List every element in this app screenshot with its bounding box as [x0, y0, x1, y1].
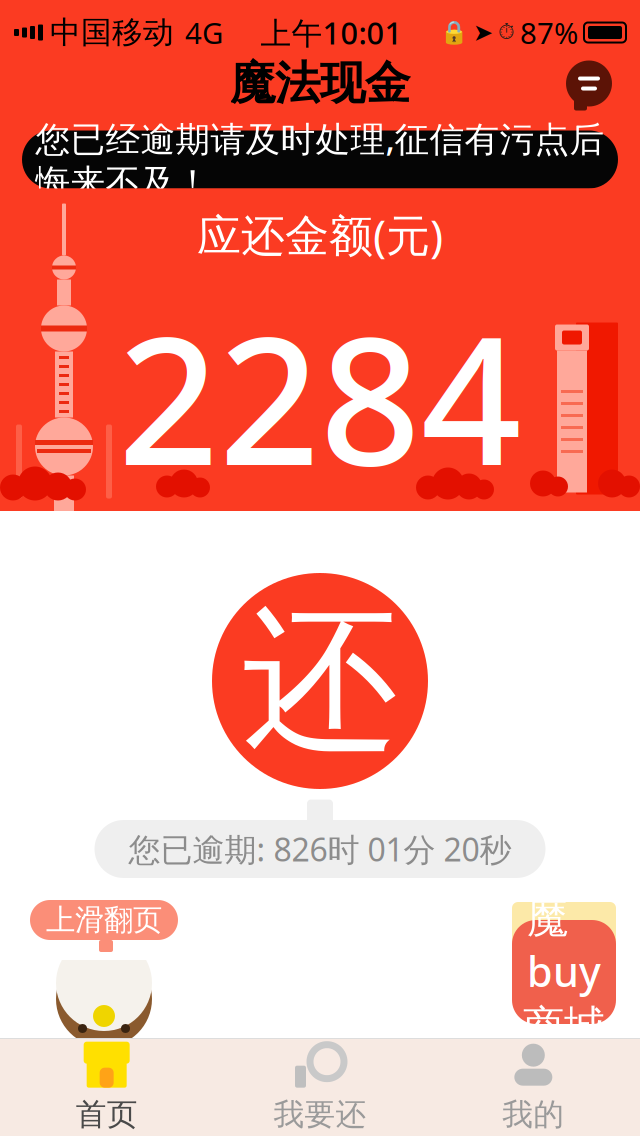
staticText: 上滑翻页	[46, 902, 162, 938]
button[interactable]: 我要还	[213, 1039, 427, 1135]
button[interactable]: 我的	[427, 1039, 640, 1135]
staticText: 首页	[76, 1096, 138, 1133]
staticText: 4G	[185, 13, 223, 52]
staticText: 魔buy	[527, 893, 601, 998]
staticText: 上午10:01	[260, 12, 402, 53]
staticText: 87%	[520, 13, 578, 52]
button[interactable]: 客服消息	[562, 56, 616, 110]
staticText: 2284	[118, 280, 522, 514]
button[interactable]: 首页	[0, 1039, 213, 1135]
button[interactable]: 您已经逾期请及时处理,征信有污点后悔来不及！	[22, 130, 618, 188]
staticText: 您已经逾期请及时处理,征信有污点后悔来不及！	[35, 115, 604, 204]
staticText: 我要还	[273, 1096, 366, 1133]
staticText: 中国移动	[50, 14, 174, 51]
staticText: 还	[241, 584, 398, 778]
staticText: 魔法现金	[230, 56, 410, 111]
staticText: 🔒	[440, 20, 468, 45]
staticText: ⏱	[498, 22, 515, 43]
staticText: 您已逾期: 826时 01分 20秒	[128, 828, 511, 870]
staticText: ➤	[473, 19, 493, 46]
button[interactable]: 魔buy商城	[494, 906, 634, 1038]
button[interactable]: 立即还款	[212, 573, 428, 789]
button[interactable]: 上滑翻页	[30, 900, 178, 1038]
staticText: 应还金额(元)	[197, 205, 443, 264]
staticText: 商城	[523, 1000, 605, 1051]
staticText: 我的	[502, 1096, 564, 1133]
